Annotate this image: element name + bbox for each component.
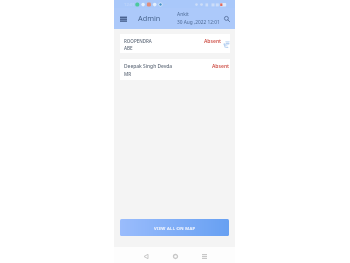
staticText: Deepak Singh Devda bbox=[124, 63, 173, 70]
staticText: Ankit bbox=[177, 11, 189, 18]
button[interactable]: VIEW ALL ON MAP bbox=[120, 219, 229, 236]
button[interactable]: Deepak Singh Devda bbox=[120, 59, 230, 80]
staticText: Absent bbox=[204, 38, 222, 45]
staticText: ABE bbox=[124, 45, 133, 51]
staticText: Admin bbox=[138, 13, 161, 23]
staticText: VIEW ALL ON MAP bbox=[154, 225, 196, 231]
button[interactable]: Menu bbox=[117, 12, 129, 24]
staticText: ROOPENDRA bbox=[124, 38, 152, 44]
button[interactable]: Back bbox=[140, 250, 152, 262]
button[interactable]: Recents bbox=[198, 250, 210, 262]
staticText: Absent bbox=[212, 63, 230, 70]
staticText: MR bbox=[124, 71, 132, 77]
button[interactable]: Search bbox=[221, 13, 233, 25]
button[interactable]: Home bbox=[169, 250, 181, 262]
button[interactable]: ROOPENDRA bbox=[120, 34, 230, 53]
staticText: 30 Aug ,2022 12:01 bbox=[177, 19, 220, 26]
staticText: 12:01 bbox=[124, 2, 135, 8]
button[interactable]: Call bbox=[223, 41, 229, 48]
